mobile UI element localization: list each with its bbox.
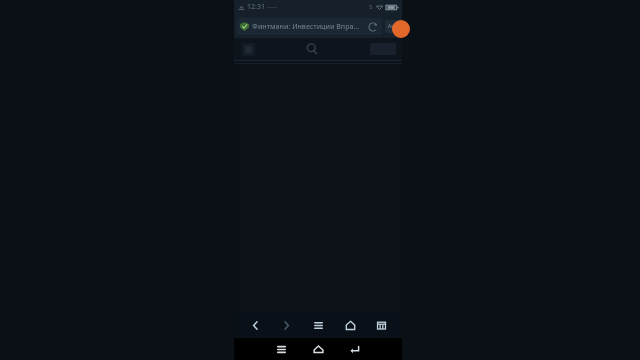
button[interactable]: Home: [309, 340, 327, 358]
button[interactable]: Profile: [392, 20, 410, 38]
button[interactable]: Финтмани: Инвестиции Впра…: [237, 18, 382, 35]
staticText: 5: [369, 3, 373, 11]
staticText: Ads: [388, 23, 397, 30]
button[interactable]: Recents: [272, 340, 290, 358]
staticText: 12:31: [247, 2, 265, 12]
button[interactable]: Ads: [385, 20, 399, 33]
button[interactable]: Forward: [275, 314, 297, 336]
button[interactable]: Page actions: [242, 43, 255, 56]
button[interactable]: Back: [346, 340, 364, 358]
button[interactable]: Home: [339, 314, 361, 336]
staticText: Финтмани: Инвестиции Впра…: [252, 22, 365, 32]
button[interactable]: Tabs: [370, 314, 392, 336]
button[interactable]: Back: [244, 314, 266, 336]
button[interactable]: Reload: [367, 21, 379, 33]
button[interactable]: Search: [302, 39, 322, 59]
button[interactable]: Menu: [307, 314, 329, 336]
